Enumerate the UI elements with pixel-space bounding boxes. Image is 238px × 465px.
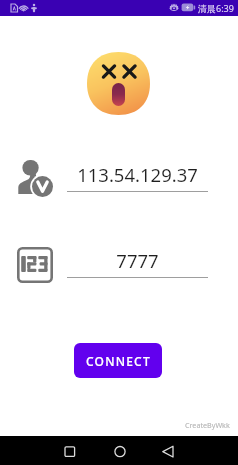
button[interactable]: Back [150,436,184,465]
staticText: 113.54.129.37 [67,162,208,187]
staticText: 清晨6:39 [198,2,234,14]
staticText: CreateByWkk [185,420,230,430]
button[interactable]: Home [102,436,136,465]
button[interactable]: CONNECT [74,343,162,378]
staticText: CONNECT [86,353,151,369]
staticText: 7777 [67,248,208,273]
button[interactable]: Recent apps [52,436,86,465]
